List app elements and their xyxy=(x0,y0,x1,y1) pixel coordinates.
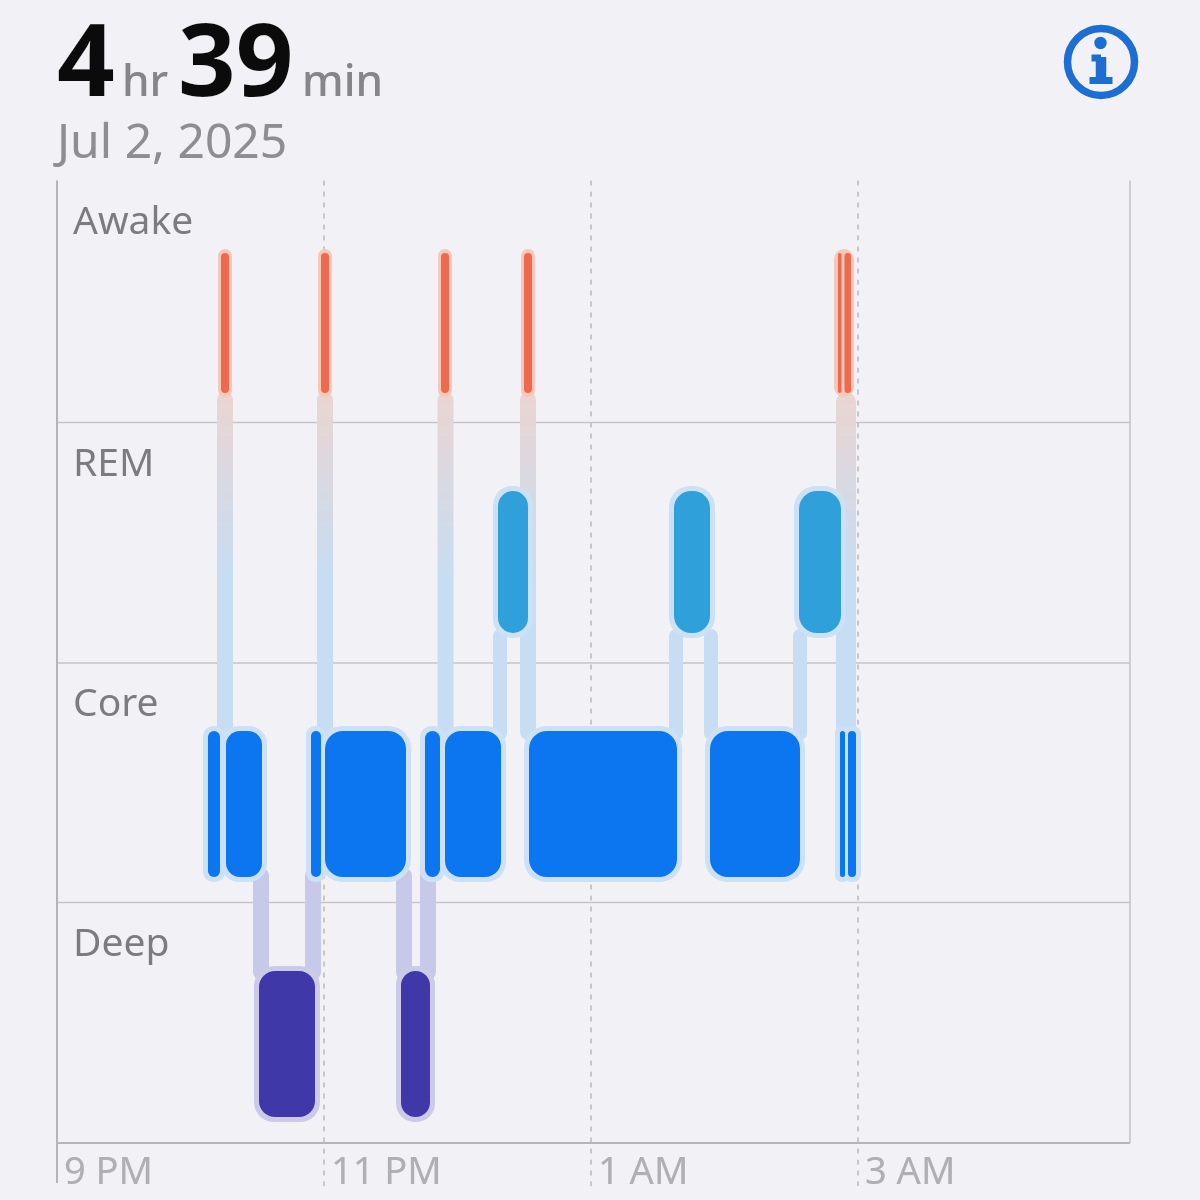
staticText: 11 PM xyxy=(331,1143,442,1195)
staticText: 1 AM xyxy=(598,1143,689,1195)
staticText: 39 xyxy=(178,0,294,126)
staticText: REM xyxy=(73,434,155,487)
staticText: Core xyxy=(73,674,159,727)
staticText: min xyxy=(302,49,384,109)
staticText: Deep xyxy=(73,914,170,967)
staticText: 4 xyxy=(57,0,115,126)
staticText: 3 AM xyxy=(865,1143,956,1195)
staticText: Awake xyxy=(73,192,194,245)
staticText: 9 PM xyxy=(64,1143,154,1195)
button[interactable] xyxy=(1060,21,1142,103)
staticText: Jul 2, 2025 xyxy=(57,107,288,172)
staticText: hr xyxy=(122,49,169,109)
